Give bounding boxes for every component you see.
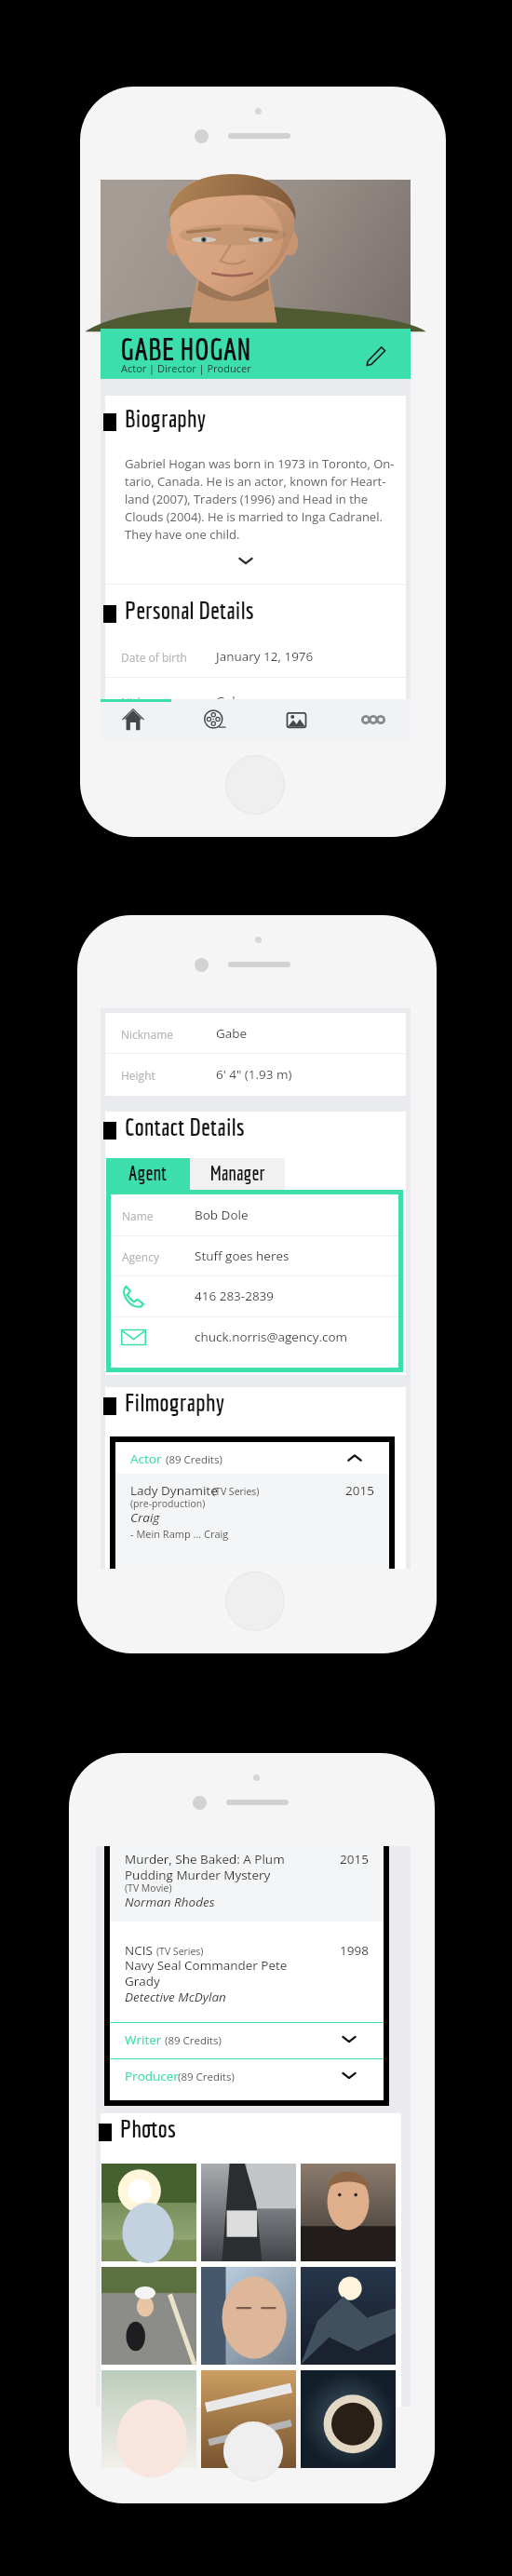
staticText: Actor <box>130 1450 162 1467</box>
staticText: 1998 <box>313 1942 369 1959</box>
staticText: Stuff goes heres <box>195 1248 290 1264</box>
button[interactable]: More options <box>338 699 409 740</box>
button[interactable]: Photo <box>101 2370 196 2468</box>
staticText: Gabe <box>216 693 248 709</box>
button[interactable]: Photo <box>101 2267 196 2365</box>
staticText: (TV Series) <box>212 1485 260 1498</box>
staticText: Gabe <box>216 1025 248 1042</box>
button[interactable]: Photos <box>261 699 331 740</box>
staticText: Agency <box>122 1249 159 1264</box>
staticText: Biography <box>125 404 207 432</box>
button[interactable]: Photo <box>301 2267 396 2365</box>
button[interactable]: Photo <box>201 2164 296 2261</box>
staticText: Norman Rhodes <box>125 1894 215 1910</box>
staticText: (TV Movie) <box>125 1881 172 1895</box>
button[interactable]: Expand biography <box>217 549 275 572</box>
staticText: Name <box>122 1208 154 1223</box>
staticText: Date of birth <box>121 650 187 665</box>
button[interactable]: Writer <box>110 2023 384 2055</box>
staticText: (89 Credits) <box>166 1452 222 1467</box>
staticText: chuck.norris@agency.com <box>195 1328 348 1345</box>
button[interactable]: Home <box>98 699 168 740</box>
staticText: 2015 <box>318 1482 374 1499</box>
button[interactable]: Agent <box>106 1158 190 1190</box>
button[interactable]: Photo <box>201 2370 296 2468</box>
staticText: Personal Details <box>125 596 254 624</box>
button[interactable]: Photo <box>101 2164 196 2261</box>
staticText: Contact Details <box>125 1113 245 1140</box>
staticText: 416 283-2839 <box>195 1288 275 1304</box>
staticText: Navy Seal Commander Pete Grady <box>125 1957 288 1989</box>
staticText: Agent <box>128 1162 168 1184</box>
staticText: Murder, She Baked: A Plum Pudding Murder… <box>125 1851 285 1883</box>
staticText: Detective McDylan <box>125 1989 226 2005</box>
staticText: NCIS <box>125 1942 153 1959</box>
button[interactable]: Photo <box>301 2164 396 2261</box>
button[interactable]: Producer <box>110 2059 384 2091</box>
button[interactable]: Filmography <box>179 699 249 740</box>
button[interactable]: Actor <box>115 1442 389 1474</box>
staticText: Craig <box>130 1509 160 1526</box>
staticText: Producer <box>125 2068 179 2084</box>
button[interactable]: Photo <box>301 2370 396 2468</box>
staticText: Actor | Director | Producer <box>121 361 251 375</box>
staticText: January 12, 1976 <box>216 648 314 665</box>
staticText: Height <box>121 1068 155 1083</box>
staticText: Nickname <box>121 1027 173 1042</box>
button[interactable]: Edit profile <box>361 341 391 371</box>
staticText: 2015 <box>313 1851 369 1868</box>
staticText: Filmography <box>125 1388 224 1416</box>
staticText: (pre-production) <box>130 1497 206 1510</box>
staticText: Photos <box>120 2114 176 2142</box>
staticText: (89 Credits) <box>178 2070 235 2084</box>
staticText: Writer <box>125 2031 162 2048</box>
staticText: Nickname <box>121 695 173 709</box>
staticText: 6' 4" (1.93 m) <box>216 1066 292 1083</box>
staticText: GABE HOGAN <box>120 331 251 367</box>
staticText: Gabriel Hogan was born in 1973 in Toront… <box>125 455 395 543</box>
button[interactable]: Manager <box>190 1158 285 1190</box>
staticText: Lady Dynamite <box>130 1482 218 1499</box>
staticText: (89 Credits) <box>165 2033 222 2048</box>
staticText: - Mein Ramp ... Craig <box>130 1527 229 1541</box>
staticText: Manager <box>210 1162 265 1184</box>
button[interactable]: Photo <box>201 2267 296 2365</box>
staticText: Bob Dole <box>195 1207 249 1223</box>
staticText: (TV Series) <box>156 1945 204 1958</box>
